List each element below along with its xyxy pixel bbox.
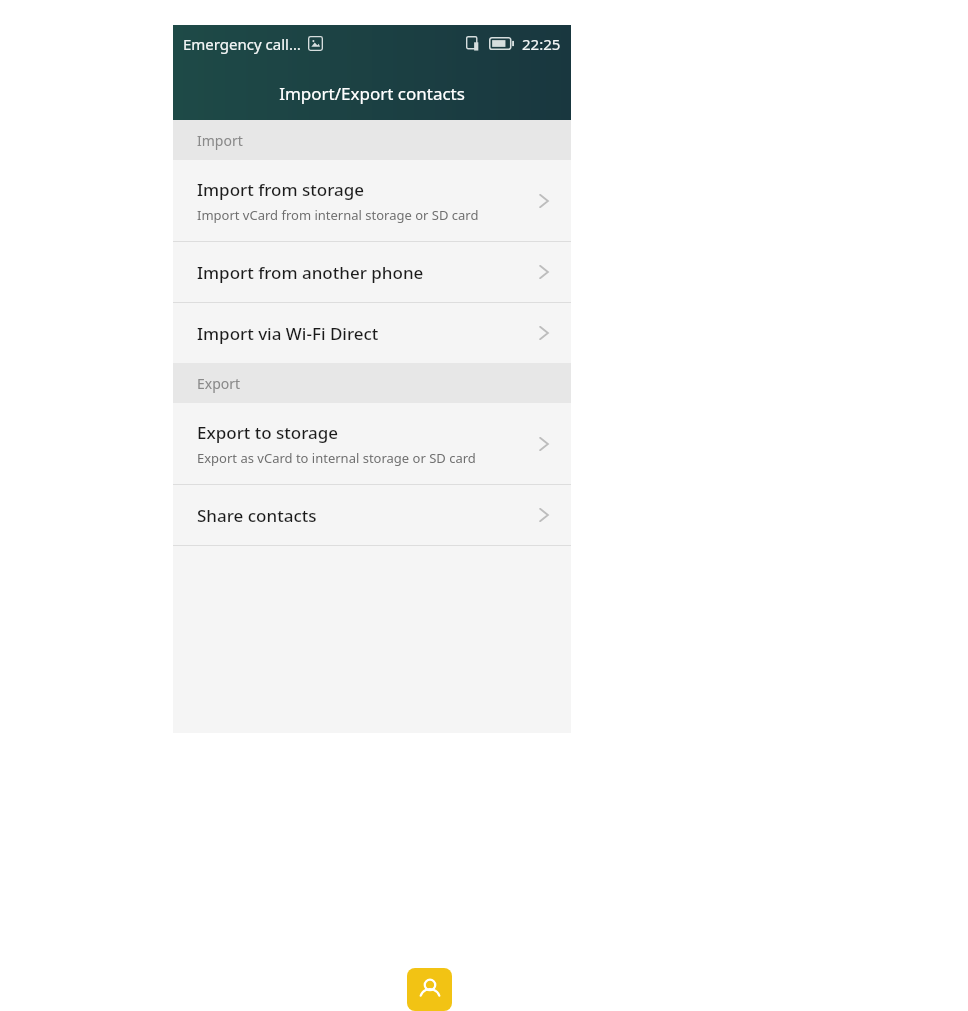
staticText: Share contacts — [197, 504, 317, 527]
staticText: Import from another phone — [197, 261, 424, 284]
staticText: 22:25 — [522, 34, 561, 54]
staticText: Import — [197, 131, 243, 150]
staticText: Import via Wi-Fi Direct — [197, 322, 379, 345]
staticText: Import vCard from internal storage or SD… — [197, 206, 479, 224]
staticText: Export — [197, 374, 241, 393]
staticText: Import from storage — [197, 178, 365, 201]
staticText: Export to storage — [197, 421, 339, 444]
button[interactable]: Contacts — [407, 968, 452, 1011]
button[interactable]: Share contacts — [173, 485, 571, 545]
staticText: Emergency call… — [183, 34, 301, 54]
button[interactable]: Import from another phone — [173, 242, 571, 302]
staticText: Import/Export contacts — [279, 82, 465, 105]
staticText: Export as vCard to internal storage or S… — [197, 449, 476, 467]
button[interactable]: Import via Wi-Fi Direct — [173, 303, 571, 363]
button[interactable]: Export to storage — [173, 403, 571, 484]
button[interactable]: Import from storage — [173, 160, 571, 241]
